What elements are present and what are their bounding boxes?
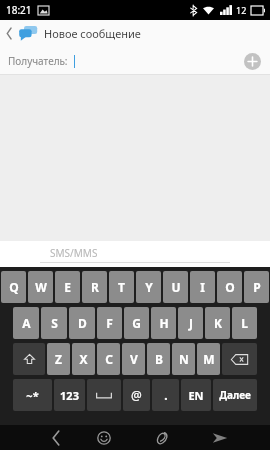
button[interactable]: EN (181, 379, 211, 411)
button[interactable]: V (122, 343, 145, 375)
button[interactable]: W (28, 271, 53, 303)
button[interactable]: N (172, 343, 195, 375)
staticText: 123 (60, 388, 79, 403)
button[interactable]: 123 (54, 379, 85, 411)
button[interactable]: Получатель: (0, 46, 270, 75)
button[interactable]: H (151, 307, 176, 339)
button[interactable]: ~* (13, 379, 52, 411)
button[interactable]: M (197, 343, 220, 375)
staticText: Z (55, 351, 62, 367)
button[interactable]: A (13, 307, 39, 339)
button[interactable]: F (97, 307, 122, 339)
staticText: L (241, 315, 248, 331)
staticText: G (132, 315, 141, 331)
staticText: X (79, 351, 88, 367)
button[interactable]: Shift (13, 343, 45, 375)
staticText: . (164, 387, 168, 403)
staticText: 12 (236, 4, 247, 16)
staticText: M (203, 351, 215, 367)
staticText: S (51, 315, 58, 331)
button[interactable]: E (55, 271, 80, 303)
button[interactable]: B (147, 343, 170, 375)
button[interactable]: O (217, 271, 242, 303)
staticText: SMS/MMS (50, 246, 98, 260)
staticText: U (171, 279, 181, 295)
staticText: K (214, 315, 222, 331)
button[interactable]: Z (47, 343, 70, 375)
staticText: E (64, 279, 71, 295)
staticText: C (105, 351, 113, 367)
button[interactable]: I (190, 271, 215, 303)
button[interactable]: G (124, 307, 149, 339)
button[interactable]: C (97, 343, 120, 375)
staticText: F (106, 315, 113, 331)
button[interactable]: Далее (213, 379, 257, 411)
button[interactable]: SMS/MMS (0, 241, 270, 267)
staticText: 18:21 (6, 3, 32, 17)
button[interactable]: D (69, 307, 95, 339)
button[interactable]: Send (200, 425, 240, 450)
button[interactable]: Space (87, 379, 121, 411)
button[interactable]: U (163, 271, 188, 303)
staticText: Y (145, 279, 153, 295)
staticText: Далее (219, 388, 251, 402)
staticText: @ (131, 387, 142, 403)
staticText: V (130, 351, 138, 367)
button[interactable]: R (82, 271, 107, 303)
button[interactable]: Add recipient (242, 51, 262, 71)
button[interactable]: J (178, 307, 203, 339)
button[interactable]: . (152, 379, 179, 411)
staticText: N (179, 351, 189, 367)
staticText: R (91, 279, 99, 295)
staticText: O (225, 279, 235, 295)
staticText: Новое сообщение (44, 26, 141, 41)
button[interactable]: Q (1, 271, 26, 303)
button[interactable]: Back (0, 20, 18, 46)
button[interactable]: Attach (142, 425, 182, 450)
staticText: H (159, 315, 169, 331)
staticText: P (253, 279, 261, 295)
button[interactable]: L (232, 307, 257, 339)
staticText: Q (9, 279, 19, 295)
button[interactable]: Emoji (84, 425, 124, 450)
staticText: Получатель: (8, 54, 68, 68)
staticText: D (78, 315, 87, 331)
button[interactable]: S (41, 307, 67, 339)
staticText: B (155, 351, 163, 367)
staticText: EN (188, 388, 204, 403)
button[interactable]: P (244, 271, 269, 303)
staticText: T (118, 279, 125, 295)
staticText: A (22, 315, 31, 331)
button[interactable]: T (109, 271, 134, 303)
button[interactable]: K (205, 307, 230, 339)
button[interactable]: Backspace (222, 343, 257, 375)
staticText: I (200, 279, 205, 295)
button[interactable]: @ (123, 379, 150, 411)
staticText: W (35, 279, 47, 295)
button[interactable]: X (72, 343, 95, 375)
button[interactable]: Back (36, 425, 76, 450)
staticText: ~* (26, 388, 39, 403)
button[interactable]: Y (136, 271, 161, 303)
staticText: J (189, 315, 193, 331)
